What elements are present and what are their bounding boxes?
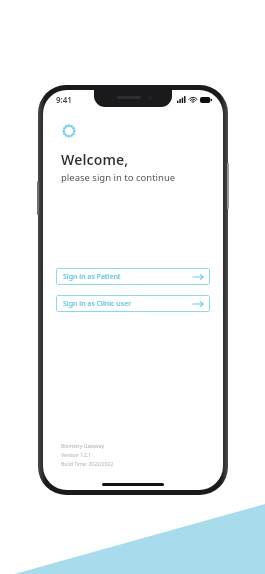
staticText: Biometry Gateway <box>61 443 105 450</box>
staticText: Sign in as Patient <box>63 272 121 282</box>
staticText: please sign in to continue <box>61 171 176 184</box>
button[interactable]: Sign in as Clinic user <box>56 295 210 312</box>
staticText: Welcome, <box>61 150 129 169</box>
staticText: Build Time: 2022/2022 <box>61 461 114 468</box>
staticText: Sign in as Clinic user <box>63 299 132 309</box>
button[interactable]: Sign in as Patient <box>56 268 210 285</box>
staticText: Version 1.2.1 <box>61 452 92 459</box>
staticText: 9:41 <box>56 94 72 105</box>
